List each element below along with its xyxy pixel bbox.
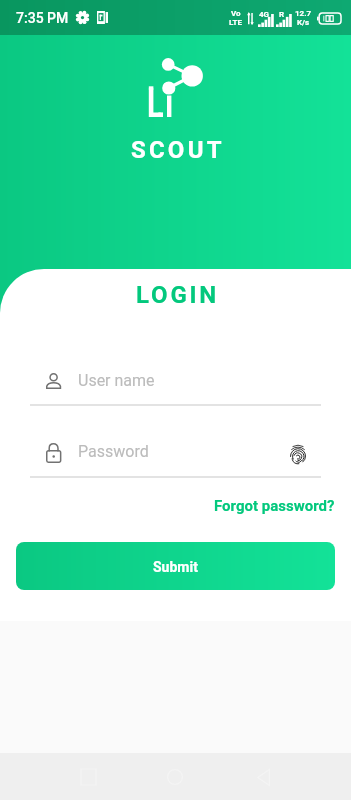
staticText: K/s — [297, 18, 310, 27]
staticText: Submit — [153, 559, 198, 575]
staticText: LTE — [229, 18, 242, 27]
staticText: User name — [78, 371, 155, 390]
button[interactable]: Sign in with fingerprint — [287, 443, 309, 465]
staticText: 7:35 PM — [16, 10, 69, 26]
staticText: Vo — [231, 9, 241, 18]
staticText: LOGIN — [136, 281, 220, 309]
staticText: 4G — [259, 10, 270, 19]
staticText: SCOUT — [131, 136, 225, 164]
staticText: 12.7 — [295, 9, 312, 18]
button[interactable]: Forgot password? — [214, 497, 335, 515]
staticText: R — [279, 10, 285, 19]
button[interactable]: User name — [0, 362, 351, 406]
staticText: Password — [78, 442, 149, 461]
staticText: Forgot password? — [214, 497, 335, 515]
button[interactable]: Submit — [16, 542, 335, 590]
